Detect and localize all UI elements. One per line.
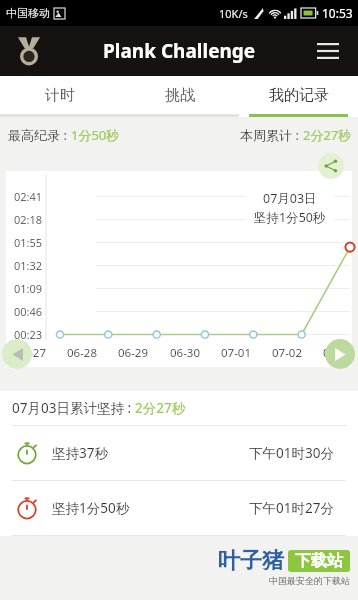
button[interactable]: Menu xyxy=(308,31,348,71)
staticText: 02:41 xyxy=(14,189,43,204)
staticText: : xyxy=(292,126,303,144)
staticText: 02:18 xyxy=(14,212,43,227)
staticText: 01:32 xyxy=(14,258,43,273)
staticText: 07-03 xyxy=(323,345,354,361)
staticText: 00:23 xyxy=(14,327,43,342)
button[interactable]: 计时 xyxy=(0,76,120,114)
staticText: Plank Challenge xyxy=(103,38,256,64)
staticText: 计时 xyxy=(45,86,75,105)
staticText: 07月03日累计坚持 xyxy=(12,399,124,417)
button[interactable]: Achievements medal xyxy=(8,30,50,72)
staticText: 坚持37秒 xyxy=(52,444,108,462)
staticText: 下载站 xyxy=(295,551,343,571)
staticText: 10K/s xyxy=(219,6,248,21)
staticText: 坚持1分50秒 xyxy=(254,209,326,226)
staticText: 06-28 xyxy=(67,345,98,361)
staticText: 2分27秒 xyxy=(303,126,352,144)
staticText: 中国最安全的下载站 xyxy=(269,575,350,586)
button[interactable]: 我的记录 xyxy=(239,76,358,114)
staticText: 10:53 xyxy=(322,5,353,21)
staticText: 06-27 xyxy=(16,345,47,361)
staticText: 坚持1分50秒 xyxy=(52,499,130,517)
staticText: 2分27秒 xyxy=(135,399,186,417)
staticText: 07-01 xyxy=(221,345,252,361)
staticText: 00:46 xyxy=(14,304,43,319)
staticText: 我的记录 xyxy=(269,86,329,105)
staticText: 下午01时30分 xyxy=(249,444,334,462)
staticText: 挑战 xyxy=(165,86,195,105)
staticText: 中国移动 xyxy=(6,6,50,20)
staticText: 01:55 xyxy=(14,235,43,250)
staticText: 07-02 xyxy=(272,345,303,361)
staticText: 1分50秒 xyxy=(71,126,120,144)
staticText: 本周累计 xyxy=(240,127,292,143)
button[interactable]: 坚持1分50秒 xyxy=(0,481,358,535)
button[interactable]: 挑战 xyxy=(120,76,239,114)
staticText: : xyxy=(60,126,71,144)
staticText: 06-30 xyxy=(170,345,201,361)
staticText: 07月03日 xyxy=(263,190,317,207)
button[interactable]: Next week xyxy=(325,339,355,369)
staticText: 01:09 xyxy=(14,281,43,296)
staticText: 叶子猪 xyxy=(218,547,284,575)
staticText: 06-29 xyxy=(118,345,149,361)
staticText: : xyxy=(124,399,135,417)
button[interactable]: Previous week xyxy=(2,339,32,369)
staticText: 下午01时27分 xyxy=(249,499,334,517)
staticText: 最高纪录 xyxy=(8,127,60,143)
button[interactable]: 坚持37秒 xyxy=(0,426,358,480)
button[interactable]: Share xyxy=(318,153,344,179)
